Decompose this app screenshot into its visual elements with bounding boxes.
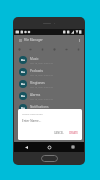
button[interactable]: Storage tab 6: [72, 44, 84, 54]
staticText: Alarms: [30, 93, 41, 97]
button[interactable]: Back: [14, 142, 38, 152]
button[interactable]: Home: [38, 142, 61, 152]
button[interactable]: Storage tab 2: [25, 44, 36, 54]
button[interactable]: Music: [14, 54, 84, 66]
button[interactable]: Storage tab 5: [60, 44, 72, 54]
staticText: Apr 18, 2021 9:20 PM: [30, 98, 53, 101]
button[interactable]: Storage tab 4: [48, 44, 60, 54]
staticText: CANCEL: [54, 131, 64, 134]
button[interactable]: CANCEL: [53, 130, 65, 135]
button[interactable]: Recent apps: [61, 142, 84, 152]
staticText: Apr 18, 2021 9:20 PM: [30, 74, 53, 77]
button[interactable]: Alarms: [14, 90, 84, 102]
button[interactable]: CREATE: [68, 130, 79, 135]
staticText: Podcasts: [30, 69, 43, 73]
staticText: CREATE: [69, 131, 78, 134]
button[interactable]: Open navigation menu: [18, 38, 22, 42]
staticText: Ringtones: [30, 81, 45, 85]
button[interactable]: Podcasts: [14, 66, 84, 78]
button[interactable]: Storage tab 3: [36, 44, 48, 54]
staticText: Apr 18, 2021 9:20 PM: [30, 86, 53, 89]
staticText: Music: [30, 57, 39, 61]
staticText: Apr 18, 2021 9:20 PM: [30, 62, 53, 65]
staticText: Create New Folder: [22, 112, 43, 115]
staticText: Enter Name...: [22, 119, 42, 123]
button[interactable]: Notifications: [14, 102, 84, 114]
button[interactable]: Ringtones: [14, 78, 84, 90]
staticText: File Manager: [24, 38, 43, 42]
button[interactable]: Storage tab 1: [14, 44, 25, 54]
staticText: Notifications: [30, 105, 49, 109]
button[interactable]: More options: [77, 38, 81, 42]
